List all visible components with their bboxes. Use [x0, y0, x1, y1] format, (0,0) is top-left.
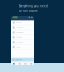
- staticText: Analytics: [16, 36, 22, 38]
- button[interactable]: Payments: [11, 40, 34, 45]
- button[interactable]: Shop: [12, 16, 18, 18]
- staticText: Everything you need: [19, 4, 48, 8]
- button[interactable]: Upgrade: [11, 58, 34, 62]
- button[interactable]: Products: [11, 25, 34, 30]
- button[interactable]: Account: [31, 17, 33, 18]
- button[interactable]: Customers: [11, 30, 34, 35]
- button[interactable]: Analytics: [11, 35, 34, 40]
- staticText: Upgrade: [15, 59, 22, 61]
- staticText: to run a store: [19, 9, 38, 12]
- button[interactable]: Home: [11, 62, 17, 67]
- staticText: Customers: [16, 31, 24, 33]
- staticText: Products: [16, 27, 23, 28]
- staticText: Payments: [16, 41, 23, 43]
- button[interactable]: Settings: [11, 45, 34, 50]
- button[interactable]: Orders: [17, 62, 23, 67]
- staticText: Shop: [13, 16, 17, 18]
- staticText: Orders: [16, 22, 22, 23]
- button[interactable]: Products: [22, 62, 28, 67]
- button[interactable]: Orders: [11, 20, 34, 25]
- staticText: Settings: [16, 46, 21, 48]
- button[interactable]: More: [28, 62, 34, 67]
